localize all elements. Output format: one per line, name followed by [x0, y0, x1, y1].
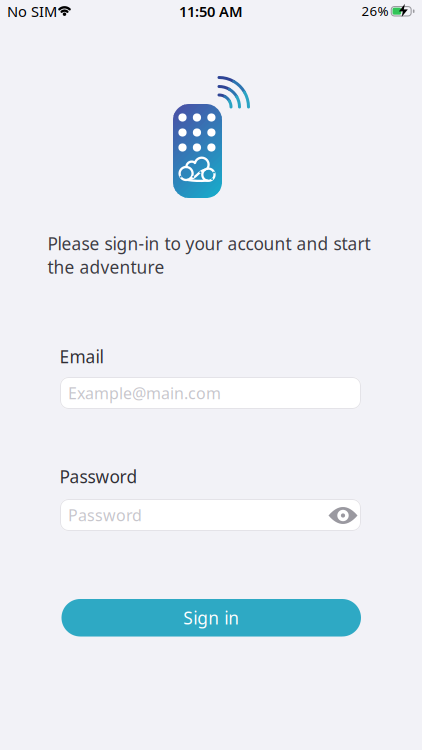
staticText: the adventure: [47, 255, 164, 278]
staticText: Sign in: [183, 606, 239, 629]
staticText: Please sign-in to your account and start: [47, 232, 370, 255]
staticText: 11:50 AM: [179, 1, 243, 21]
staticText: Example@main.com: [68, 382, 221, 404]
button[interactable]: Password: [60, 499, 361, 531]
button[interactable]: Show password: [328, 507, 357, 524]
staticText: Password: [68, 504, 142, 526]
button[interactable]: Sign in: [61, 599, 361, 636]
staticText: No SIM: [7, 1, 57, 21]
staticText: 26%: [361, 2, 388, 20]
button[interactable]: Example@main.com: [60, 377, 361, 409]
staticText: Email: [59, 345, 103, 368]
staticText: Password: [59, 465, 137, 488]
